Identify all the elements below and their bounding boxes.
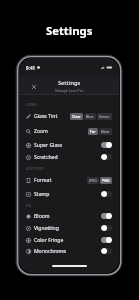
button[interactable]: Stamp xyxy=(19,188,119,200)
button[interactable]: Color Fringe xyxy=(19,234,119,246)
button[interactable]: JPEG xyxy=(87,177,99,184)
staticText: Far xyxy=(90,129,96,134)
staticText: Settings xyxy=(46,23,93,38)
staticText: Clear xyxy=(72,114,81,119)
staticText: 9:41 xyxy=(26,65,36,71)
staticText: Super Glass xyxy=(34,142,63,149)
button[interactable]: Super Glass xyxy=(19,139,119,151)
button[interactable]: Vignetting xyxy=(19,222,119,234)
staticText: Blue xyxy=(86,114,94,119)
button[interactable]: Clear xyxy=(70,113,83,120)
staticText: Vignetting xyxy=(34,225,59,232)
staticText: Settings xyxy=(58,79,81,87)
staticText: Near xyxy=(101,129,110,134)
staticText: FX xyxy=(26,203,32,208)
button[interactable]: Bloom xyxy=(19,210,119,222)
staticText: Stamp xyxy=(34,191,50,198)
staticText: Format xyxy=(34,177,52,184)
staticText: Zoom xyxy=(34,128,48,135)
button[interactable]: Close xyxy=(28,81,39,92)
staticText: Bloom xyxy=(34,213,50,220)
button[interactable]: Format xyxy=(19,173,119,188)
button[interactable]: Monochrome xyxy=(19,246,119,256)
staticText: Green xyxy=(99,114,110,119)
staticText: LENS xyxy=(26,102,38,107)
button[interactable]: Glass Tint xyxy=(19,109,119,124)
staticText: PNG xyxy=(102,178,110,183)
staticText: Color Fringe xyxy=(34,237,64,244)
staticText: Scratched xyxy=(34,154,58,161)
button[interactable]: Near xyxy=(99,128,112,135)
button[interactable]: Zoom xyxy=(19,124,119,139)
staticText: OUTPUT xyxy=(26,166,45,171)
button[interactable]: Green xyxy=(97,113,112,120)
button[interactable]: Scratched xyxy=(19,151,119,163)
staticText: Vintage Lens Pro xyxy=(55,88,84,93)
staticText: Monochrome xyxy=(34,248,67,255)
staticText: Glass Tint xyxy=(34,113,58,120)
button[interactable]: Far xyxy=(88,128,98,135)
button[interactable]: Blue xyxy=(84,113,96,120)
staticText: JPEG xyxy=(89,178,97,183)
button[interactable]: PNG xyxy=(100,177,112,184)
